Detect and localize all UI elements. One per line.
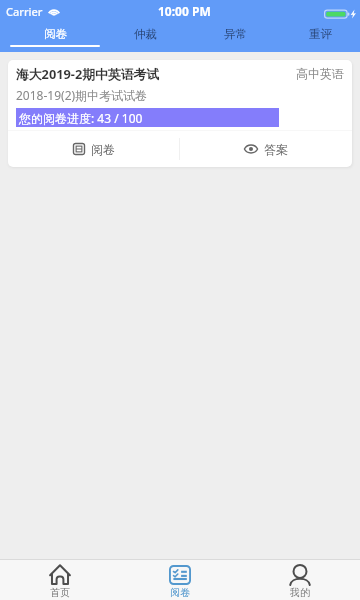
staticText: 10:00 PM [158, 3, 211, 19]
staticText: 您的阅卷进度: 43 / 100 [19, 110, 143, 126]
button[interactable]: 重评 [280, 22, 360, 52]
staticText: 仲裁 [134, 27, 157, 41]
staticText: 阅卷 [170, 586, 190, 599]
button[interactable]: 异常 [190, 22, 280, 52]
staticText: 2018-19(2)期中考试试卷 [16, 87, 148, 103]
staticText: 异常 [224, 27, 247, 41]
button[interactable]: 仲裁 [100, 22, 190, 52]
staticText: 海大2019-2期中英语考试 [16, 65, 160, 82]
staticText: 我的 [290, 586, 310, 599]
button[interactable]: 阅卷 [10, 22, 100, 52]
staticText: 高中英语 [296, 66, 344, 81]
button[interactable]: 海大2019-2期中英语考试 [8, 60, 352, 167]
staticText: Carrier [6, 4, 43, 19]
staticText: 阅卷 [44, 27, 67, 41]
staticText: 阅卷 [91, 142, 115, 157]
button[interactable]: Profile [240, 560, 360, 600]
button[interactable]: 阅卷 [8, 131, 179, 167]
staticText: 首页 [50, 586, 70, 599]
button[interactable]: 答案 [180, 131, 352, 167]
button[interactable]: Grading [120, 560, 240, 600]
button[interactable]: Home [0, 560, 120, 600]
staticText: 答案 [264, 142, 288, 157]
staticText: 重评 [309, 27, 332, 41]
